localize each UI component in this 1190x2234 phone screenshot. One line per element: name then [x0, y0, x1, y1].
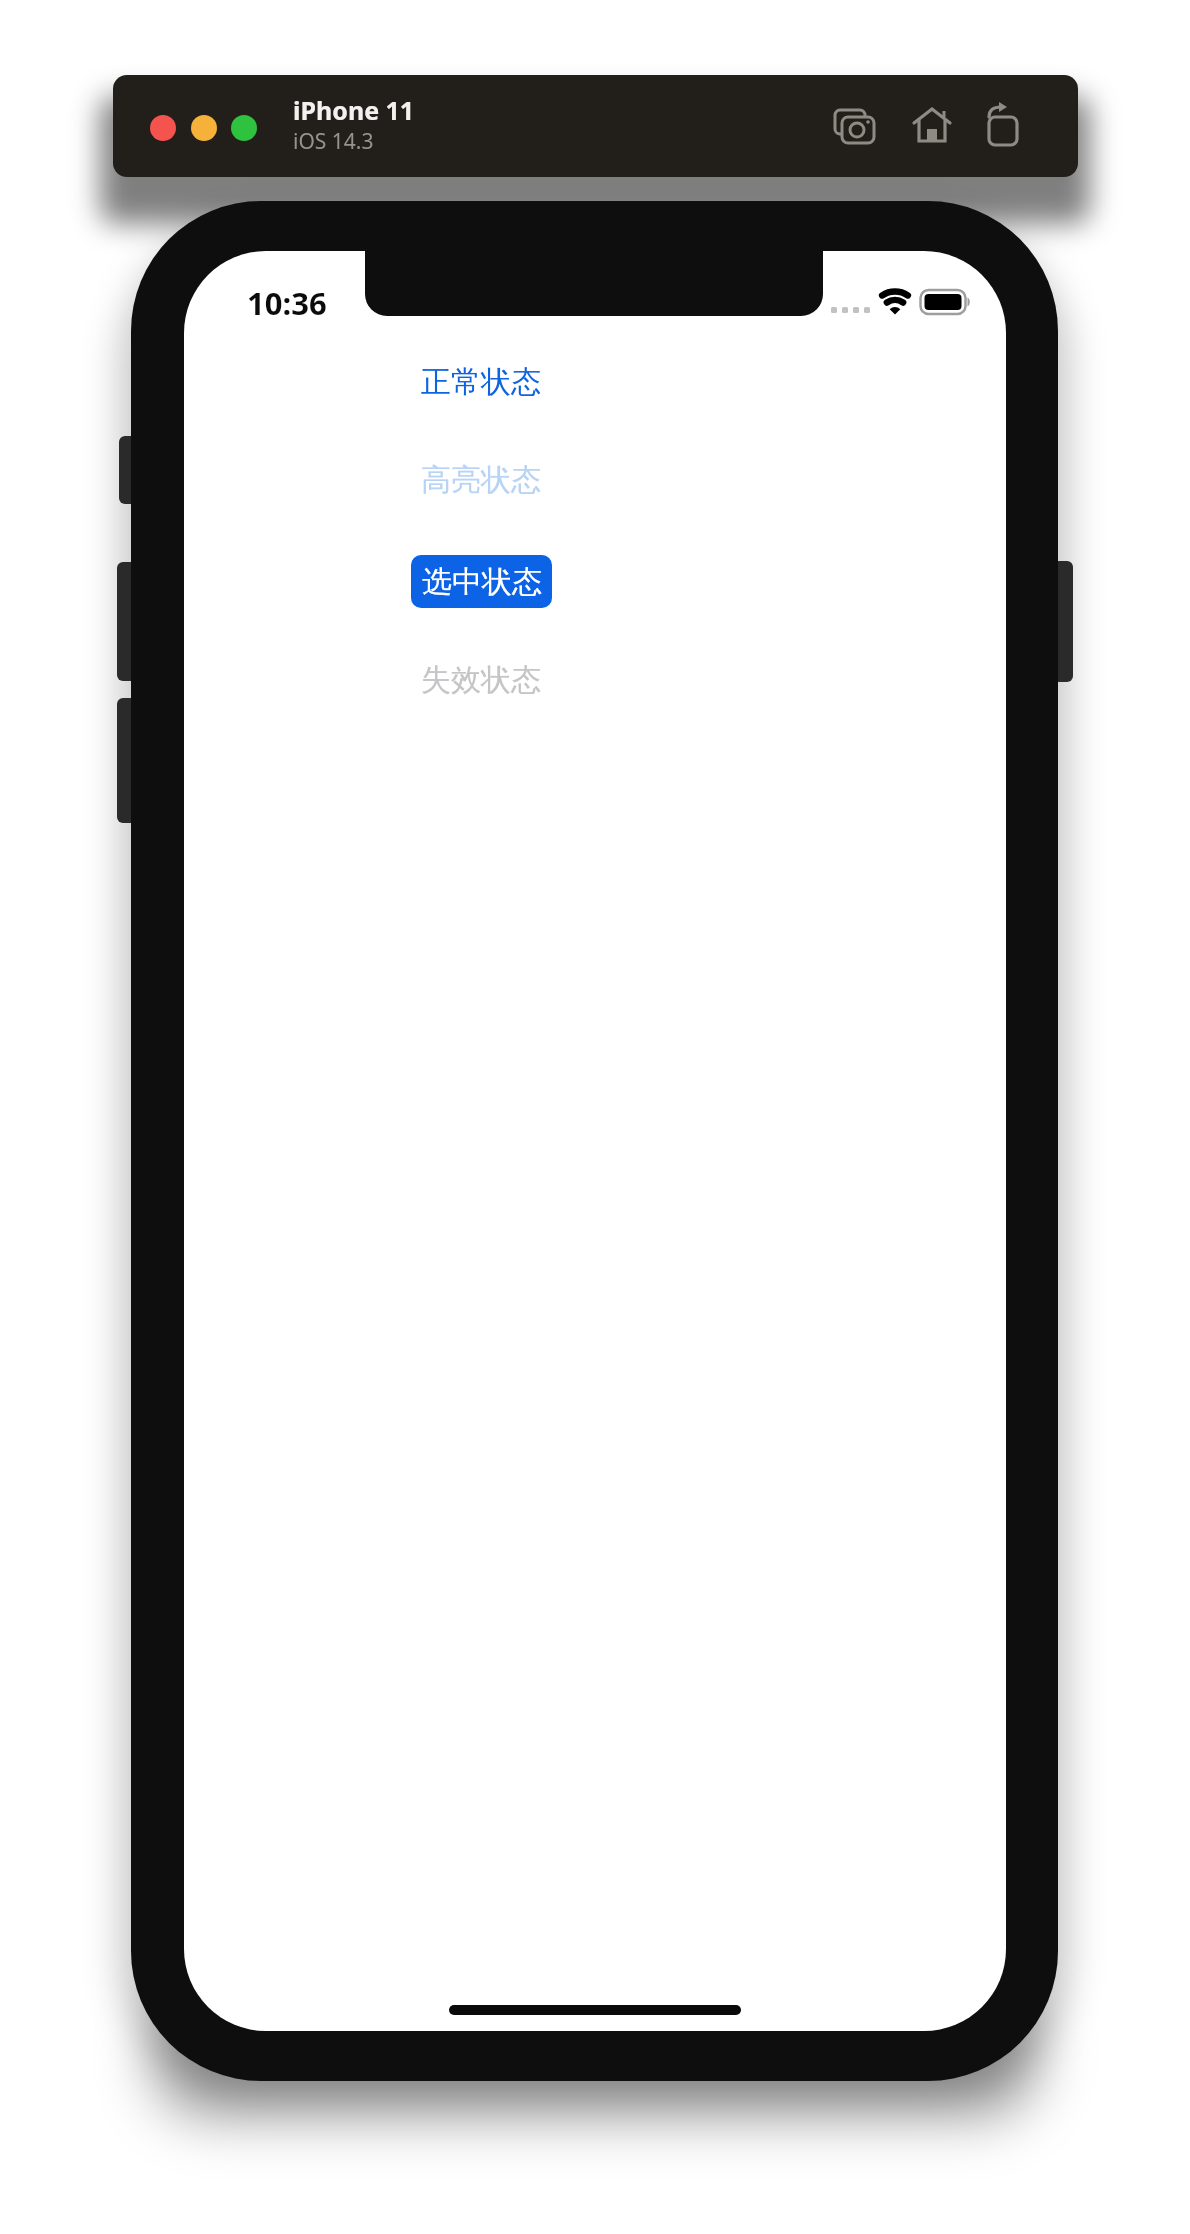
button[interactable]: 正常状态 — [381, 352, 581, 412]
staticText: 10:36 — [247, 282, 327, 324]
button[interactable] — [981, 105, 1025, 149]
staticText: iOS 14.3 — [293, 127, 374, 156]
staticText: 选中状态 — [422, 563, 542, 601]
staticText: 失效状态 — [421, 661, 541, 699]
button[interactable]: 高亮状态 — [381, 450, 581, 510]
button[interactable]: 失效状态 — [381, 650, 581, 710]
staticText: iPhone 11 — [293, 93, 415, 127]
button[interactable]: 选中状态 — [411, 555, 552, 608]
staticText: 正常状态 — [421, 363, 541, 401]
button[interactable] — [910, 105, 954, 149]
staticText: 高亮状态 — [421, 461, 541, 499]
button[interactable] — [833, 105, 877, 149]
